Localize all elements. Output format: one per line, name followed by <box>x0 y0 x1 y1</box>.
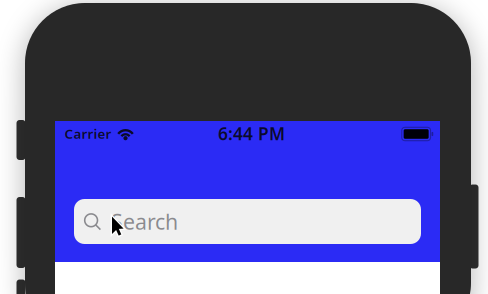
button[interactable]: Search <box>74 199 421 244</box>
staticText: Search <box>111 207 178 236</box>
staticText: Carrier <box>64 125 111 142</box>
staticText: 6:44 PM <box>218 122 285 145</box>
